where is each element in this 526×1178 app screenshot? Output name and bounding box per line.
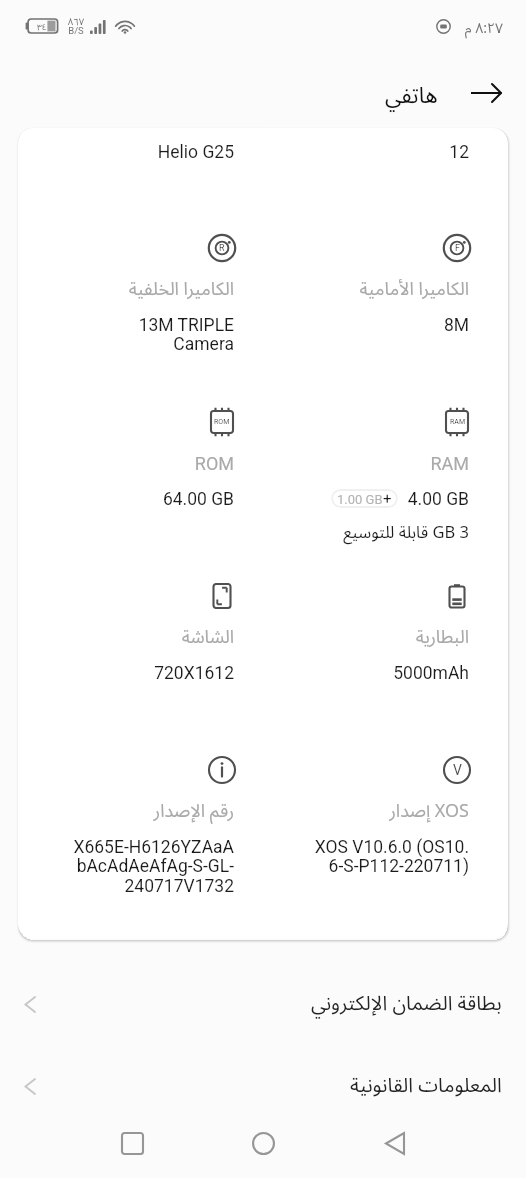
staticText: إصدار XOS [308,792,469,830]
staticText: V [453,762,462,778]
staticText: 720X1612 [73,663,234,684]
staticText: B/S [66,25,86,36]
staticText: X665E-H6126YZAaA bAcAdAeAfAg-S-GL- 24071… [73,837,234,897]
staticText: + [383,490,392,508]
staticText: XOS V10.6.0 (OS10. 6-S-P112-220711) [308,837,469,877]
staticText: الكاميرا الأمامية [308,270,469,308]
staticText: قابلة للتوسيع GB 3 [308,515,469,550]
button[interactable]: Recent apps [67,1115,198,1171]
button[interactable]: Back [329,1115,460,1171]
staticText: ٨٦٧ [66,12,86,32]
button[interactable]: بطاقة الضمان الإلكتروني [0,970,526,1038]
staticText: بطاقة الضمان الإلكتروني [311,983,502,1025]
staticText: F [455,243,460,254]
staticText: 5000mAh [308,663,469,684]
staticText: Helio G25 [73,142,234,163]
staticText: الشاشة [73,618,234,656]
staticText: ROM [214,418,230,426]
button[interactable]: Back [466,73,506,113]
staticText: 13M TRIPLE Camera [73,315,234,355]
staticText: R [219,243,225,254]
staticText: 1.00 GB [337,492,383,507]
staticText: 12 [308,142,469,163]
button[interactable]: Home [198,1115,329,1171]
staticText: رقم الإصدار [73,792,234,830]
staticText: 8M [308,315,469,336]
staticText: الكاميرا الخلفية [73,270,234,308]
staticText: RAM [450,418,465,426]
staticText: البطارية [308,618,469,656]
staticText: ٨:٢٧ م [461,14,503,44]
staticText: RAM [308,453,469,474]
staticText: المعلومات القانونية [350,1065,502,1107]
staticText: 64.00 GB [73,489,234,510]
staticText: ROM [73,453,234,474]
button[interactable]: المعلومات القانونية [0,1052,526,1120]
staticText: 4.00 GB [308,489,469,510]
staticText: ٣٤ [37,18,47,36]
staticText: هاتفي [385,73,438,119]
